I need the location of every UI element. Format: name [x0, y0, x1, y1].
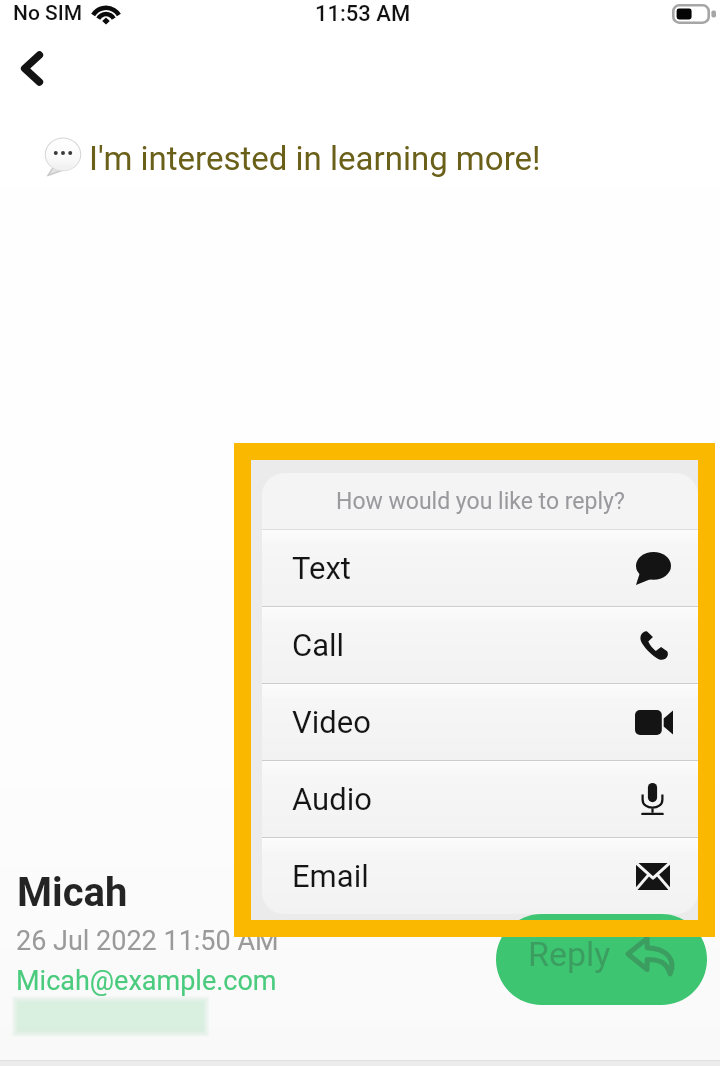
- staticText: Audio: [292, 781, 372, 817]
- staticText: Email: [292, 858, 369, 894]
- button[interactable]: Call: [262, 607, 698, 683]
- staticText: I'm interested in learning more!: [89, 139, 541, 178]
- staticText: Text: [292, 550, 351, 586]
- staticText: Micah@example.com: [16, 965, 277, 997]
- staticText: Micah: [17, 869, 128, 916]
- staticText: 11:53 AM: [315, 1, 411, 27]
- button[interactable]: Text: [262, 530, 698, 606]
- staticText: No SIM: [13, 1, 83, 26]
- button[interactable]: Back: [8, 44, 56, 92]
- staticText: 26 Jul 2022 11:50 AM: [16, 925, 279, 957]
- button[interactable]: Email: [262, 838, 698, 914]
- staticText: Call: [292, 627, 345, 663]
- staticText: Video: [292, 704, 371, 740]
- staticText: Reply: [528, 934, 611, 974]
- button[interactable]: Audio: [262, 761, 698, 837]
- button[interactable]: Video: [262, 684, 698, 760]
- staticText: How would you like to reply?: [336, 488, 625, 515]
- button[interactable]: Reply: [496, 914, 707, 1005]
